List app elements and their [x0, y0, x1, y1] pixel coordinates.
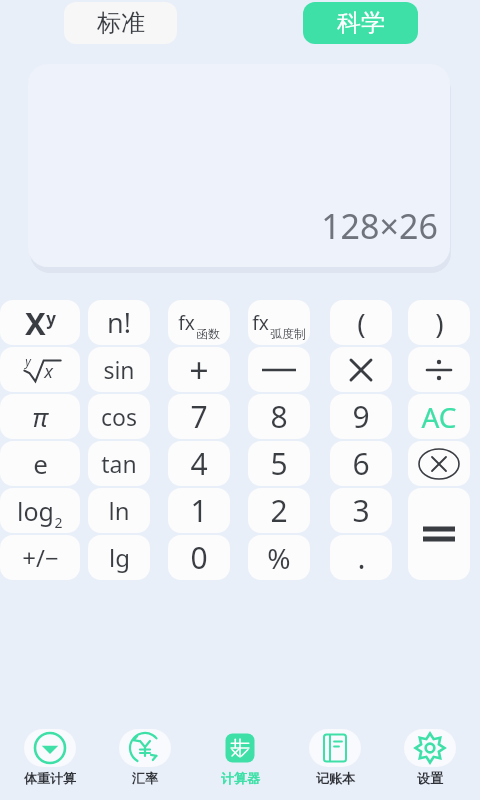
staticText: log [17, 494, 54, 528]
staticText: cos [101, 401, 137, 432]
button[interactable]: 8 [248, 394, 310, 439]
button[interactable]: y-th root of x [0, 347, 80, 392]
staticText: + [189, 347, 209, 392]
button[interactable]: 6 [330, 441, 392, 486]
button[interactable]: ( [330, 300, 392, 345]
button[interactable]: 计算器 [195, 729, 285, 786]
button[interactable]: e [0, 441, 80, 486]
button[interactable]: 体重计算 [5, 729, 95, 786]
button[interactable]: n! [88, 300, 150, 345]
staticText: 4 [190, 443, 208, 484]
staticText: ln [108, 494, 130, 527]
button[interactable]: 1 [168, 488, 230, 533]
button[interactable]: 标准 [64, 2, 177, 44]
button[interactable]: log base 2 [0, 488, 80, 533]
staticText: y [25, 353, 31, 369]
staticText: 3 [352, 490, 370, 531]
button[interactable]: 5 [248, 441, 310, 486]
staticText: lg [109, 541, 130, 574]
staticText: 记账本 [316, 770, 355, 786]
staticText: 2 [270, 490, 288, 531]
staticText: tan [101, 448, 137, 479]
button[interactable]: fx函数 [168, 300, 230, 345]
staticText: AC [421, 398, 457, 436]
button[interactable]: tan [88, 441, 150, 486]
staticText: 128×26 [321, 203, 438, 249]
button[interactable]: AC [408, 394, 470, 439]
staticText: n! [107, 304, 131, 341]
staticText: . [357, 537, 366, 578]
button[interactable]: fx弧度制 [248, 300, 310, 345]
button[interactable]: 7 [168, 394, 230, 439]
staticText: sin [103, 354, 135, 385]
button[interactable]: 0 [168, 535, 230, 580]
staticText: 体重计算 [24, 770, 76, 786]
button[interactable]: Divide [408, 347, 470, 392]
button[interactable]: lg [88, 535, 150, 580]
staticText: 0 [190, 537, 208, 578]
staticText: x [44, 359, 53, 384]
button[interactable]: % [248, 535, 310, 580]
staticText: 1 [190, 490, 208, 531]
button[interactable]: . [330, 535, 392, 580]
staticText: e [33, 446, 48, 481]
button[interactable]: ) [408, 300, 470, 345]
staticText: 9 [352, 396, 370, 437]
button[interactable]: cos [88, 394, 150, 439]
staticText: 5 [270, 443, 288, 484]
button[interactable]: ln [88, 488, 150, 533]
staticText: 弧度制 [270, 326, 306, 341]
button[interactable]: Minus [248, 347, 310, 392]
staticText: π [32, 399, 48, 434]
staticText: fx [252, 310, 269, 336]
button[interactable]: + [168, 347, 230, 392]
button[interactable]: 科学 [303, 2, 418, 44]
button[interactable]: 9 [330, 394, 392, 439]
staticText: fx [178, 310, 195, 336]
staticText: 6 [352, 443, 370, 484]
staticText: ( [357, 304, 366, 342]
button[interactable]: π [0, 394, 80, 439]
button[interactable]: Equals [408, 488, 470, 580]
button[interactable]: 设置 [385, 729, 475, 786]
staticText: ) [435, 304, 444, 342]
staticText: 计算器 [221, 770, 260, 786]
button[interactable]: 4 [168, 441, 230, 486]
staticText: 科学 [337, 8, 385, 38]
button[interactable]: 3 [330, 488, 392, 533]
button[interactable]: sin [88, 347, 150, 392]
button[interactable]: Backspace [408, 441, 470, 486]
staticText: 函数 [196, 326, 220, 341]
staticText: y [46, 307, 56, 330]
button[interactable]: 汇率 [100, 729, 190, 786]
staticText: 标准 [97, 8, 145, 38]
button[interactable]: x to the power y [0, 300, 80, 345]
button[interactable]: 记账本 [290, 729, 380, 786]
staticText: 设置 [417, 770, 443, 786]
staticText: +/− [22, 541, 59, 574]
button[interactable]: 2 [248, 488, 310, 533]
staticText: % [267, 539, 291, 577]
button[interactable]: 128×26 [28, 64, 450, 267]
button[interactable]: Multiply [330, 347, 392, 392]
staticText: 汇率 [132, 770, 158, 786]
staticText: 2 [54, 513, 63, 532]
staticText: 7 [190, 396, 208, 437]
staticText: 8 [270, 396, 288, 437]
staticText: X [25, 302, 46, 344]
button[interactable]: +/− [0, 535, 80, 580]
